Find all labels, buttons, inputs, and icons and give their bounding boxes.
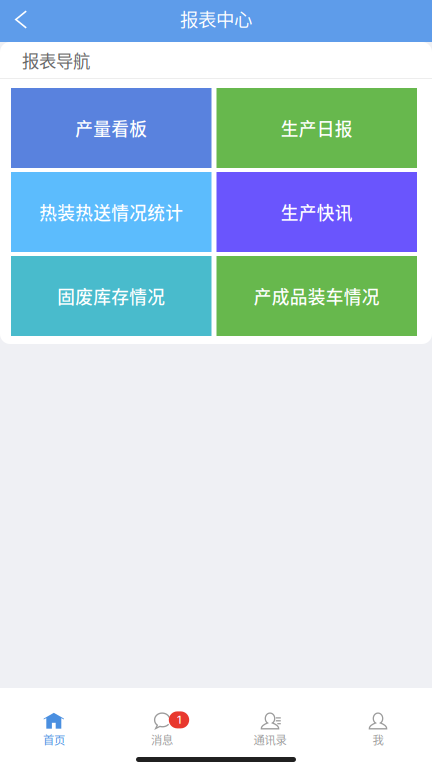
button[interactable]: 1: [108, 679, 216, 753]
button[interactable]: 我: [324, 679, 432, 753]
staticText: 我: [372, 731, 383, 748]
button[interactable]: 产成品装车情况: [216, 256, 417, 336]
button[interactable]: 生产快讯: [216, 172, 417, 252]
staticText: 热装热送情况统计: [39, 199, 183, 225]
button[interactable]: 固废库存情况: [11, 256, 211, 336]
button[interactable]: Back: [0, 0, 42, 42]
staticText: 首页: [43, 731, 65, 748]
button[interactable]: 热装热送情况统计: [11, 172, 211, 252]
staticText: 生产快讯: [281, 199, 353, 225]
staticText: 产成品装车情况: [254, 283, 380, 309]
button[interactable]: 生产日报: [216, 88, 417, 168]
staticText: 1: [177, 713, 181, 726]
staticText: 生产日报: [281, 115, 353, 141]
staticText: 产量看板: [75, 115, 147, 141]
staticText: 报表中心: [180, 5, 252, 32]
button[interactable]: 首页: [0, 679, 108, 753]
button[interactable]: 产量看板: [11, 88, 211, 168]
staticText: 报表导航: [22, 47, 90, 73]
staticText: 固废库存情况: [57, 283, 165, 309]
button[interactable]: 通讯录: [216, 679, 324, 753]
staticText: 消息: [151, 731, 173, 748]
staticText: 通讯录: [253, 731, 286, 748]
